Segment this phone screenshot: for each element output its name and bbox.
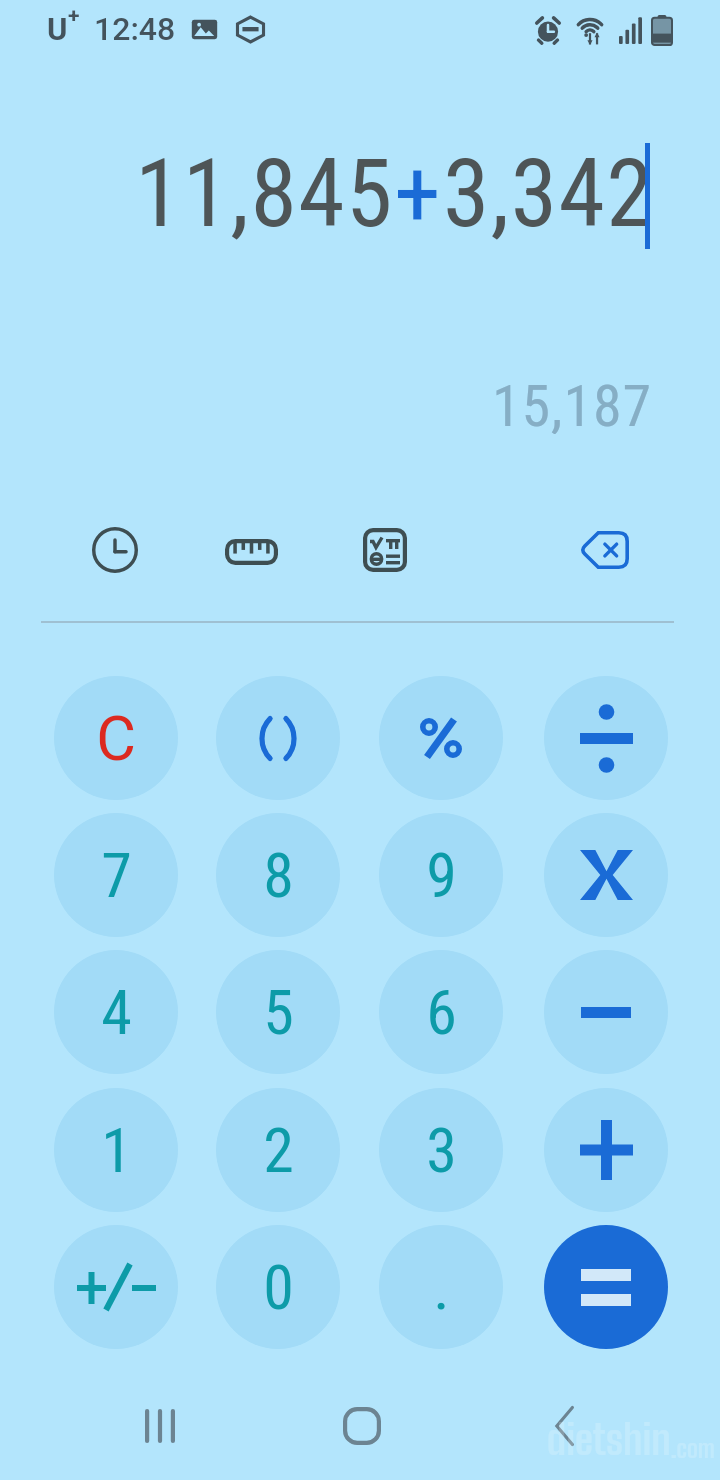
staticText: . (433, 1251, 450, 1324)
button[interactable]: 6 (379, 950, 503, 1074)
button[interactable]: 0 (216, 1225, 340, 1349)
staticText: 9 (426, 839, 457, 912)
staticText: U (47, 11, 68, 47)
staticText: 8 (263, 839, 294, 912)
staticText: 4 (101, 976, 132, 1049)
button[interactable]: Scientific calculator (347, 512, 423, 588)
staticText: 15,187 (492, 372, 652, 434)
staticText: C (96, 703, 136, 774)
button[interactable]: Unit converter (213, 514, 289, 590)
staticText: 11,845 (135, 139, 394, 245)
button[interactable]: Recents (120, 1386, 200, 1466)
button[interactable]: History (77, 512, 153, 588)
staticText: .com (671, 1434, 715, 1463)
button[interactable]: Multiply (544, 813, 668, 937)
button[interactable]: 3 (379, 1088, 503, 1212)
button[interactable]: Parentheses (216, 676, 340, 800)
staticText: dietshin (547, 1415, 671, 1464)
staticText: 6 (426, 976, 457, 1049)
staticText: 3 (426, 1114, 457, 1187)
staticText: 7 (101, 839, 132, 912)
staticText: 0 (263, 1251, 294, 1324)
button[interactable]: 8 (216, 813, 340, 937)
staticText: 5 (263, 976, 294, 1049)
staticText: + (394, 139, 443, 245)
button[interactable]: Equals (544, 1225, 668, 1349)
button[interactable]: Plus (544, 1088, 668, 1212)
staticText: 1 (101, 1114, 132, 1187)
button[interactable]: 7 (54, 813, 178, 937)
button[interactable]: Backspace (567, 512, 643, 588)
staticText: 2 (263, 1114, 294, 1187)
staticText: 12:48 (94, 10, 176, 48)
button[interactable]: C (54, 676, 178, 800)
button[interactable]: 5 (216, 950, 340, 1074)
button[interactable]: Plus minus (54, 1225, 178, 1349)
staticText: 3,342 (443, 139, 655, 245)
button[interactable]: Home (322, 1386, 402, 1466)
button[interactable]: Divide (544, 676, 668, 800)
button[interactable]: 2 (216, 1088, 340, 1212)
button[interactable]: 9 (379, 813, 503, 937)
button[interactable]: Minus (544, 950, 668, 1074)
button[interactable]: 1 (54, 1088, 178, 1212)
staticText: + (68, 4, 80, 29)
button[interactable]: 4 (54, 950, 178, 1074)
button[interactable]: Percent (379, 676, 503, 800)
button[interactable]: Back (524, 1386, 604, 1466)
button[interactable]: . (379, 1225, 503, 1349)
